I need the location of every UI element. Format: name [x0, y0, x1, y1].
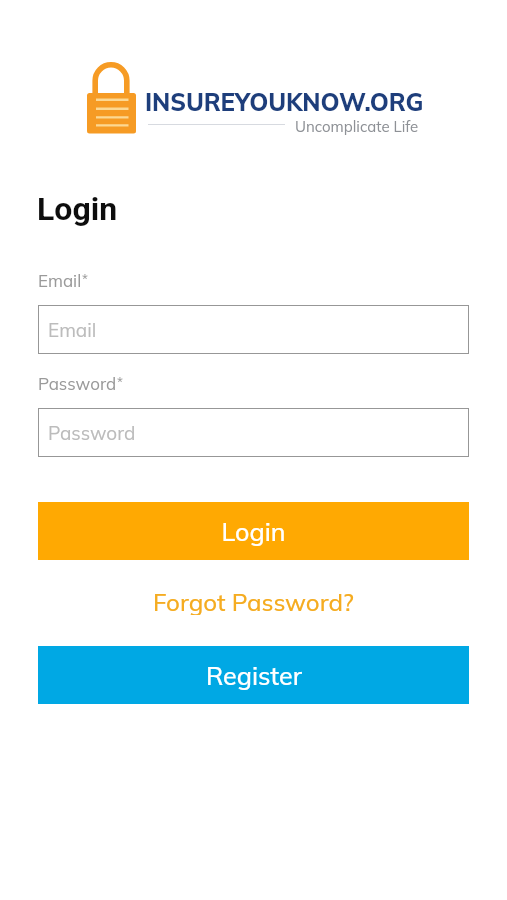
staticText: *: [117, 374, 123, 390]
staticText: Uncomplicate Life: [295, 117, 419, 136]
staticText: INSUREYOUKNOW.ORG: [145, 87, 424, 117]
staticText: Email: [38, 270, 82, 291]
staticText: Password: [48, 421, 136, 445]
button[interactable]: Password: [38, 408, 469, 457]
other: Lock logo: [86, 61, 137, 135]
staticText: Password: [38, 373, 117, 394]
staticText: Email: [48, 318, 97, 342]
staticText: Login: [37, 190, 118, 228]
staticText: Login: [221, 516, 286, 547]
staticText: Register: [206, 660, 302, 691]
button[interactable]: Login: [38, 502, 469, 560]
button[interactable]: Forgot Password?: [0, 587, 507, 615]
button[interactable]: Email: [38, 305, 469, 354]
staticText: Forgot Password?: [153, 587, 354, 615]
button[interactable]: Register: [38, 646, 469, 704]
staticText: *: [82, 271, 88, 287]
